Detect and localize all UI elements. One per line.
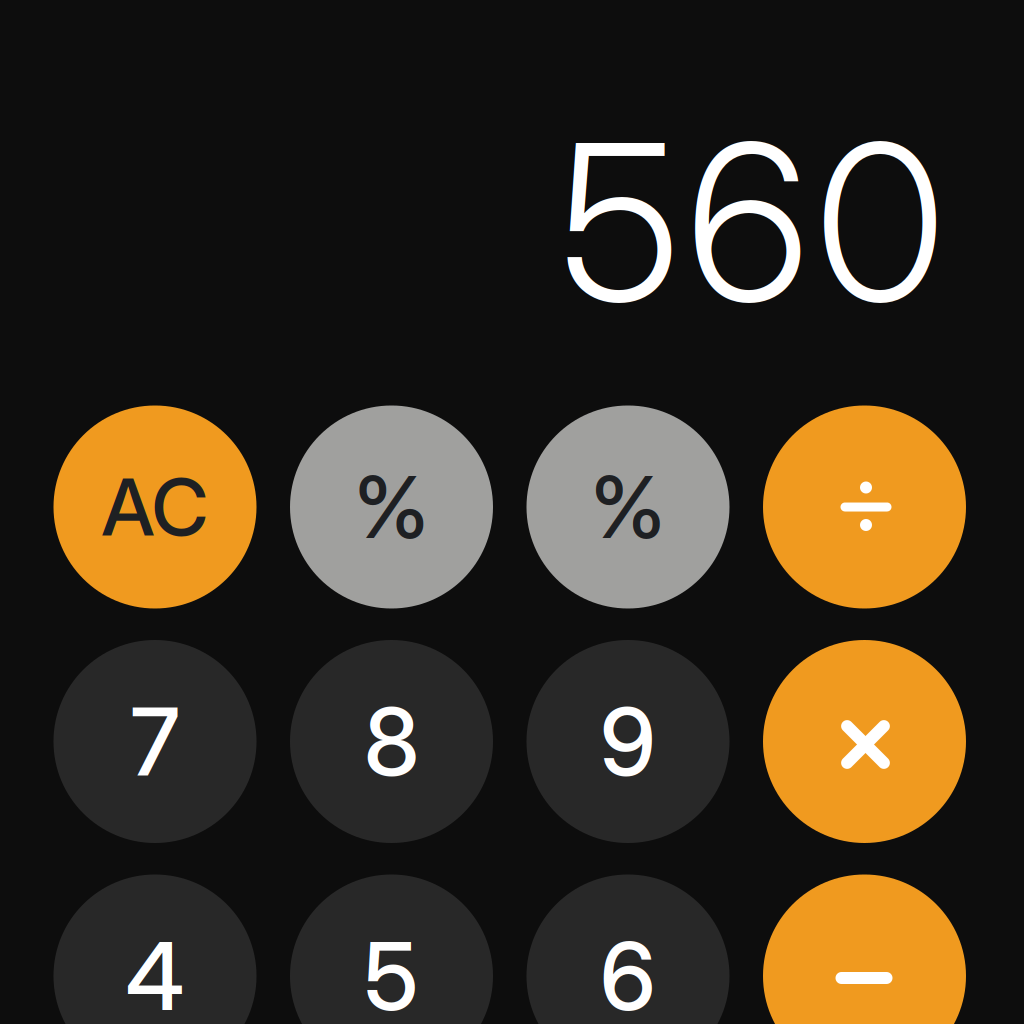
button[interactable]: 6 xyxy=(526,874,729,1024)
button[interactable]: 4 xyxy=(53,874,256,1024)
staticText: 7 xyxy=(130,685,179,798)
button[interactable]: % xyxy=(526,405,729,608)
button[interactable]: Minus xyxy=(763,874,966,1024)
button[interactable]: AC xyxy=(53,405,256,608)
staticText: 9 xyxy=(600,685,656,798)
button[interactable]: Divide xyxy=(763,405,966,608)
button[interactable]: % xyxy=(290,405,493,608)
staticText: 6 xyxy=(600,919,656,1024)
button[interactable]: 8 xyxy=(290,640,493,843)
button[interactable]: 9 xyxy=(526,640,729,843)
staticText: % xyxy=(354,455,429,559)
button[interactable]: Multiply xyxy=(763,640,966,843)
staticText: 8 xyxy=(364,685,419,798)
button[interactable]: 5 xyxy=(290,874,493,1024)
button[interactable]: 7 xyxy=(53,640,256,843)
staticText: % xyxy=(590,455,665,559)
staticText: 560 xyxy=(559,90,944,353)
staticText: AC xyxy=(101,459,208,555)
staticText: 4 xyxy=(125,919,184,1024)
staticText: 5 xyxy=(364,919,419,1024)
